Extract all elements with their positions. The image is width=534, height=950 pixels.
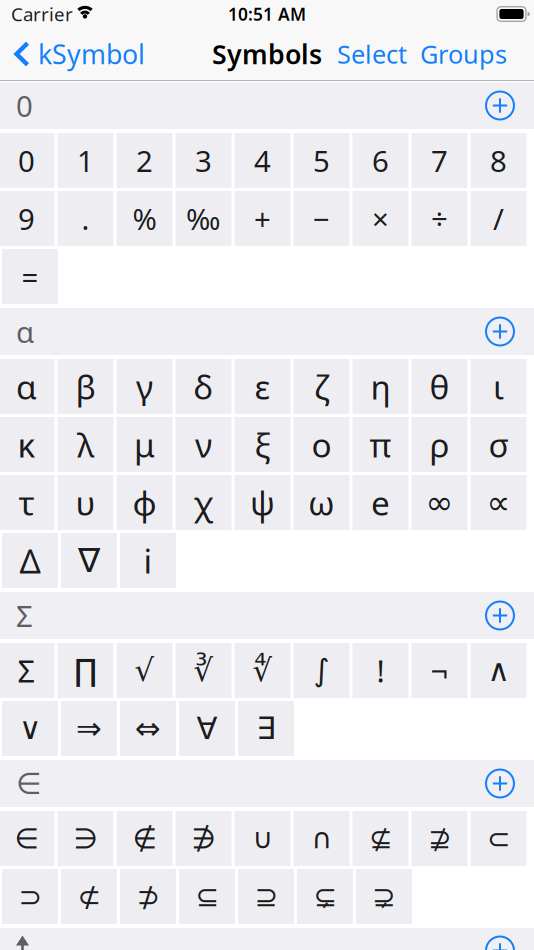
button[interactable]: Select — [337, 37, 407, 71]
button[interactable]: 1 — [57, 133, 113, 188]
button[interactable]: ⊋ — [356, 869, 412, 924]
staticText: 9 — [18, 199, 35, 238]
button[interactable]: ⊅ — [120, 869, 176, 924]
button[interactable]: e — [352, 475, 408, 530]
button[interactable]: 0 — [0, 133, 54, 188]
button[interactable]: 5 — [293, 133, 349, 188]
button[interactable]: ∀ — [179, 701, 235, 756]
button[interactable]: ¬ — [411, 643, 467, 698]
button[interactable]: η — [352, 359, 408, 414]
button[interactable]: ⊆ — [179, 869, 235, 924]
button[interactable]: ∃ — [238, 701, 294, 756]
button[interactable]: Back to kSymbol — [0, 36, 145, 72]
staticText: ∞ — [425, 484, 453, 521]
button[interactable]: ⊉ — [411, 811, 467, 866]
staticText: ⊇ — [254, 881, 277, 912]
button[interactable]: ∌ — [175, 811, 231, 866]
button[interactable]: μ — [116, 417, 172, 472]
button[interactable]: ÷ — [411, 191, 467, 246]
button[interactable]: ∈ — [0, 811, 54, 866]
button[interactable]: 3 — [175, 133, 231, 188]
staticText: ⊄ — [77, 881, 100, 912]
button[interactable]: × — [352, 191, 408, 246]
button[interactable]: ∏ — [57, 643, 113, 698]
button[interactable]: χ — [175, 475, 231, 530]
button[interactable]: ∧ — [470, 643, 526, 698]
button[interactable]: ⊂ — [470, 811, 526, 866]
button[interactable]: ζ — [293, 359, 349, 414]
button[interactable]: ⊃ — [2, 869, 58, 924]
button[interactable]: + — [234, 191, 290, 246]
button[interactable]: Add symbol — [486, 936, 514, 950]
button[interactable]: τ — [0, 475, 54, 530]
button[interactable]: ∨ — [2, 701, 58, 756]
button[interactable]: ε — [234, 359, 290, 414]
staticText: ∩ — [311, 823, 331, 854]
button[interactable]: ρ — [411, 417, 467, 472]
button[interactable]: ⇒ — [61, 701, 117, 756]
button[interactable]: σ — [470, 417, 526, 472]
button[interactable]: ∩ — [293, 811, 349, 866]
button[interactable]: ο — [293, 417, 349, 472]
staticText: α — [16, 364, 37, 409]
button[interactable]: ∉ — [116, 811, 172, 866]
button[interactable]: i — [120, 533, 176, 588]
button[interactable]: Groups — [420, 37, 507, 71]
button[interactable]: φ — [116, 475, 172, 530]
button[interactable]: ∫ — [293, 643, 349, 698]
button[interactable]: 2 — [116, 133, 172, 188]
staticText: ⊊ — [313, 881, 336, 912]
staticText: Carrier — [11, 2, 73, 26]
button[interactable]: ⊈ — [352, 811, 408, 866]
button[interactable]: % — [116, 191, 172, 246]
button[interactable]: ⇔ — [120, 701, 176, 756]
button[interactable]: π — [352, 417, 408, 472]
button[interactable]: ∪ — [234, 811, 290, 866]
button[interactable]: ⊇ — [238, 869, 294, 924]
staticText: τ — [18, 480, 34, 525]
button[interactable]: α — [0, 359, 54, 414]
button[interactable]: 6 — [352, 133, 408, 188]
button[interactable]: 4 — [234, 133, 290, 188]
button[interactable]: δ — [175, 359, 231, 414]
button[interactable]: Δ — [2, 533, 58, 588]
button[interactable]: ! — [352, 643, 408, 698]
button[interactable]: γ — [116, 359, 172, 414]
button[interactable]: ∜ — [234, 643, 290, 698]
button[interactable]: Add symbol — [486, 317, 514, 345]
button[interactable]: ‰ — [175, 191, 231, 246]
button[interactable]: ξ — [234, 417, 290, 472]
button[interactable]: = — [2, 249, 58, 304]
button[interactable]: υ — [57, 475, 113, 530]
button[interactable]: ∛ — [175, 643, 231, 698]
button[interactable]: ψ — [234, 475, 290, 530]
button[interactable]: ∝ — [470, 475, 526, 530]
button[interactable]: √ — [116, 643, 172, 698]
button[interactable]: κ — [0, 417, 54, 472]
staticText: ν — [195, 422, 212, 467]
button[interactable]: Σ — [0, 643, 54, 698]
button[interactable]: − — [293, 191, 349, 246]
button[interactable]: β — [57, 359, 113, 414]
button[interactable]: λ — [57, 417, 113, 472]
button[interactable]: 8 — [470, 133, 526, 188]
button[interactable]: 7 — [411, 133, 467, 188]
button[interactable]: ν — [175, 417, 231, 472]
button[interactable]: Add symbol — [486, 91, 514, 119]
button[interactable]: ω — [293, 475, 349, 530]
button[interactable]: Add symbol — [486, 601, 514, 629]
button[interactable]: ∇ — [61, 533, 117, 588]
button[interactable]: ∞ — [411, 475, 467, 530]
button[interactable]: / — [470, 191, 526, 246]
button[interactable]: ⊄ — [61, 869, 117, 924]
staticText: 8 — [490, 141, 507, 180]
button[interactable]: θ — [411, 359, 467, 414]
button[interactable]: ∋ — [57, 811, 113, 866]
button[interactable]: 9 — [0, 191, 54, 246]
staticText: ⊆ — [195, 881, 218, 912]
staticText: ∏ — [74, 653, 97, 688]
button[interactable]: ⊊ — [297, 869, 353, 924]
button[interactable]: ι — [470, 359, 526, 414]
button[interactable]: . — [57, 191, 113, 246]
button[interactable]: Add symbol — [486, 769, 514, 797]
